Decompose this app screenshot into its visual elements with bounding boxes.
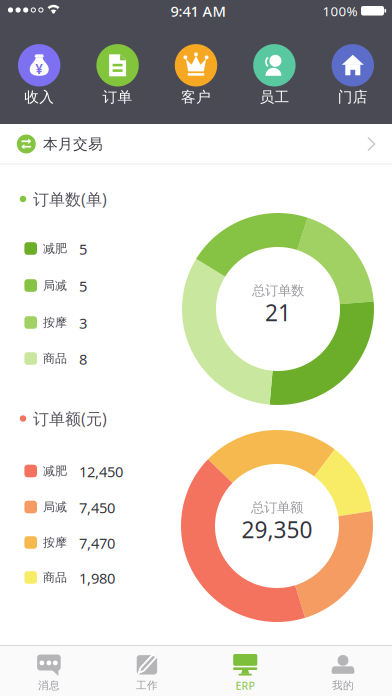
button[interactable]: 订单 <box>78 30 157 124</box>
staticText: 局减 <box>43 500 67 514</box>
staticText: 收入 <box>24 88 54 106</box>
staticText: 5 <box>79 276 87 296</box>
staticText: 21 <box>265 297 291 327</box>
staticText: 29,350 <box>241 514 312 544</box>
staticText: 订单额(元) <box>33 408 107 429</box>
staticText: 7,450 <box>79 498 115 517</box>
staticText: 员工 <box>259 88 289 106</box>
staticText: 消息 <box>38 679 60 692</box>
staticText: 订单 <box>103 88 133 106</box>
button[interactable]: 客户 <box>157 30 235 124</box>
staticText: 我的 <box>332 679 354 692</box>
staticText: 按摩 <box>43 535 67 550</box>
staticText: 本月交易 <box>43 135 103 153</box>
staticText: 减肥 <box>43 464 67 478</box>
staticText: 商品 <box>43 570 67 585</box>
staticText: 9:41 AM <box>170 1 225 21</box>
button[interactable]: 我的 <box>294 646 392 696</box>
staticText: 总订单数 <box>252 282 304 299</box>
staticText: 门店 <box>338 88 368 106</box>
staticText: ERP <box>235 678 254 693</box>
staticText: 12,450 <box>79 462 123 481</box>
staticText: 按摩 <box>43 315 67 330</box>
button[interactable]: 本月交易 <box>0 124 392 164</box>
staticText: 8 <box>79 349 87 369</box>
staticText: 1,980 <box>79 568 115 588</box>
button[interactable]: ERP <box>196 646 294 696</box>
staticText: 100% <box>322 2 357 20</box>
button[interactable]: 门店 <box>314 30 392 124</box>
staticText: 局减 <box>43 278 67 293</box>
button[interactable]: 工作 <box>98 646 196 696</box>
staticText: 商品 <box>43 351 67 366</box>
button[interactable]: ¥ <box>0 30 78 124</box>
staticText: 7,470 <box>79 533 115 553</box>
staticText: 5 <box>79 239 87 259</box>
staticText: 工作 <box>136 679 158 692</box>
staticText: 3 <box>79 313 87 333</box>
staticText: 减肥 <box>43 241 67 256</box>
button[interactable]: 员工 <box>235 30 314 124</box>
staticText: 客户 <box>181 88 211 106</box>
staticText: 订单数(单) <box>33 188 107 210</box>
button[interactable]: 消息 <box>0 646 98 696</box>
staticText: 总订单额 <box>251 499 303 516</box>
staticText: ¥ <box>35 60 43 78</box>
